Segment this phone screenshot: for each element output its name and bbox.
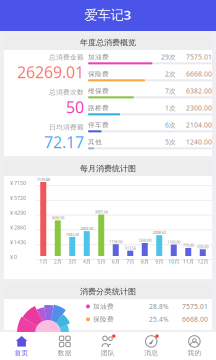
staticText: 我的 [187,349,201,357]
button[interactable]: 我的 [173,332,216,360]
staticText: 每月消费统计图 [80,164,136,173]
staticText: 4月 [83,258,91,265]
staticText: 1260.00 [138,238,151,243]
staticText: ¥ 2860 [10,224,26,231]
staticText: ¥ 7150 [10,179,26,187]
staticText: 7139.88 [37,177,50,182]
button[interactable]: 数据 [43,332,86,360]
staticText: 停车费 [88,121,109,129]
staticText: 消息 [144,349,158,357]
staticText: 1843.28 [66,232,79,237]
staticText: 年度总消费概览 [80,38,136,47]
staticText: 1月 [39,258,47,265]
staticText: 2300.00 [186,103,212,112]
staticText: 779.45 [183,243,194,248]
staticText: 7575.01 [186,52,212,61]
staticText: 10月 [168,258,179,265]
staticText: 加油费 [88,53,109,61]
staticText: 消费分类统计图 [80,287,136,296]
staticText: 首页 [15,349,29,357]
staticText: 其他 [88,138,102,146]
staticText: 1100.00 [167,239,180,245]
staticText: 2008.62 [153,230,166,235]
staticText: 3436.56 [51,215,64,220]
button[interactable]: 团队 [86,332,130,360]
staticText: 日均消费额 [49,123,84,131]
staticText: 2次 [165,69,176,78]
staticText: 11月 [183,258,194,265]
staticText: 2月 [54,258,62,265]
staticText: 维保费 [88,87,109,95]
staticText: 26269.01 [17,61,84,83]
button[interactable]: 消息 [130,332,173,360]
staticText: ¥ 0 [10,253,17,261]
staticText: 5次 [165,137,176,146]
button[interactable]: 首页 [0,332,43,360]
staticText: 6382.00 [186,86,212,95]
staticText: 25.4% [149,315,169,324]
staticText: 8月 [141,258,149,265]
staticText: 6月 [112,258,120,265]
staticText: 总消费金额 [49,53,84,61]
staticText: 6668.00 [182,315,208,324]
staticText: 7575.01 [182,302,208,311]
staticText: 2104.00 [186,120,212,129]
staticText: ¥ 4290 [10,209,26,216]
staticText: 7次 [165,86,176,95]
staticText: 12月 [197,258,208,265]
staticText: 9月 [155,258,163,265]
staticText: 50 [66,96,84,118]
staticText: 6668.00 [186,69,212,78]
staticText: 爱车记3 [84,6,131,23]
staticText: 650.00 [197,244,208,249]
staticText: 5月 [97,258,105,265]
staticText: ¥ 5720 [10,194,26,201]
staticText: 29次 [161,52,176,61]
staticText: 总消费次数 [49,88,84,96]
staticText: ¥ 1430 [10,239,26,246]
staticText: 2402.00 [80,226,93,231]
staticText: 7月 [126,258,134,265]
staticText: 路桥费 [88,104,109,112]
staticText: 28.8% [149,302,169,311]
staticText: 3月 [68,258,76,265]
staticText: 加油费 [93,302,114,310]
staticText: 团队 [101,349,115,357]
staticText: 513.56 [125,245,136,251]
staticText: 保险费 [88,70,109,78]
staticText: 6次 [165,120,176,129]
staticText: 1次 [165,103,176,112]
staticText: 1138.60 [109,239,122,244]
staticText: 数据 [58,349,72,357]
staticText: 3997.04 [95,209,108,214]
staticText: 72.17 [44,131,84,153]
staticText: 1240.00 [186,137,212,146]
staticText: 保险费 [93,315,114,323]
